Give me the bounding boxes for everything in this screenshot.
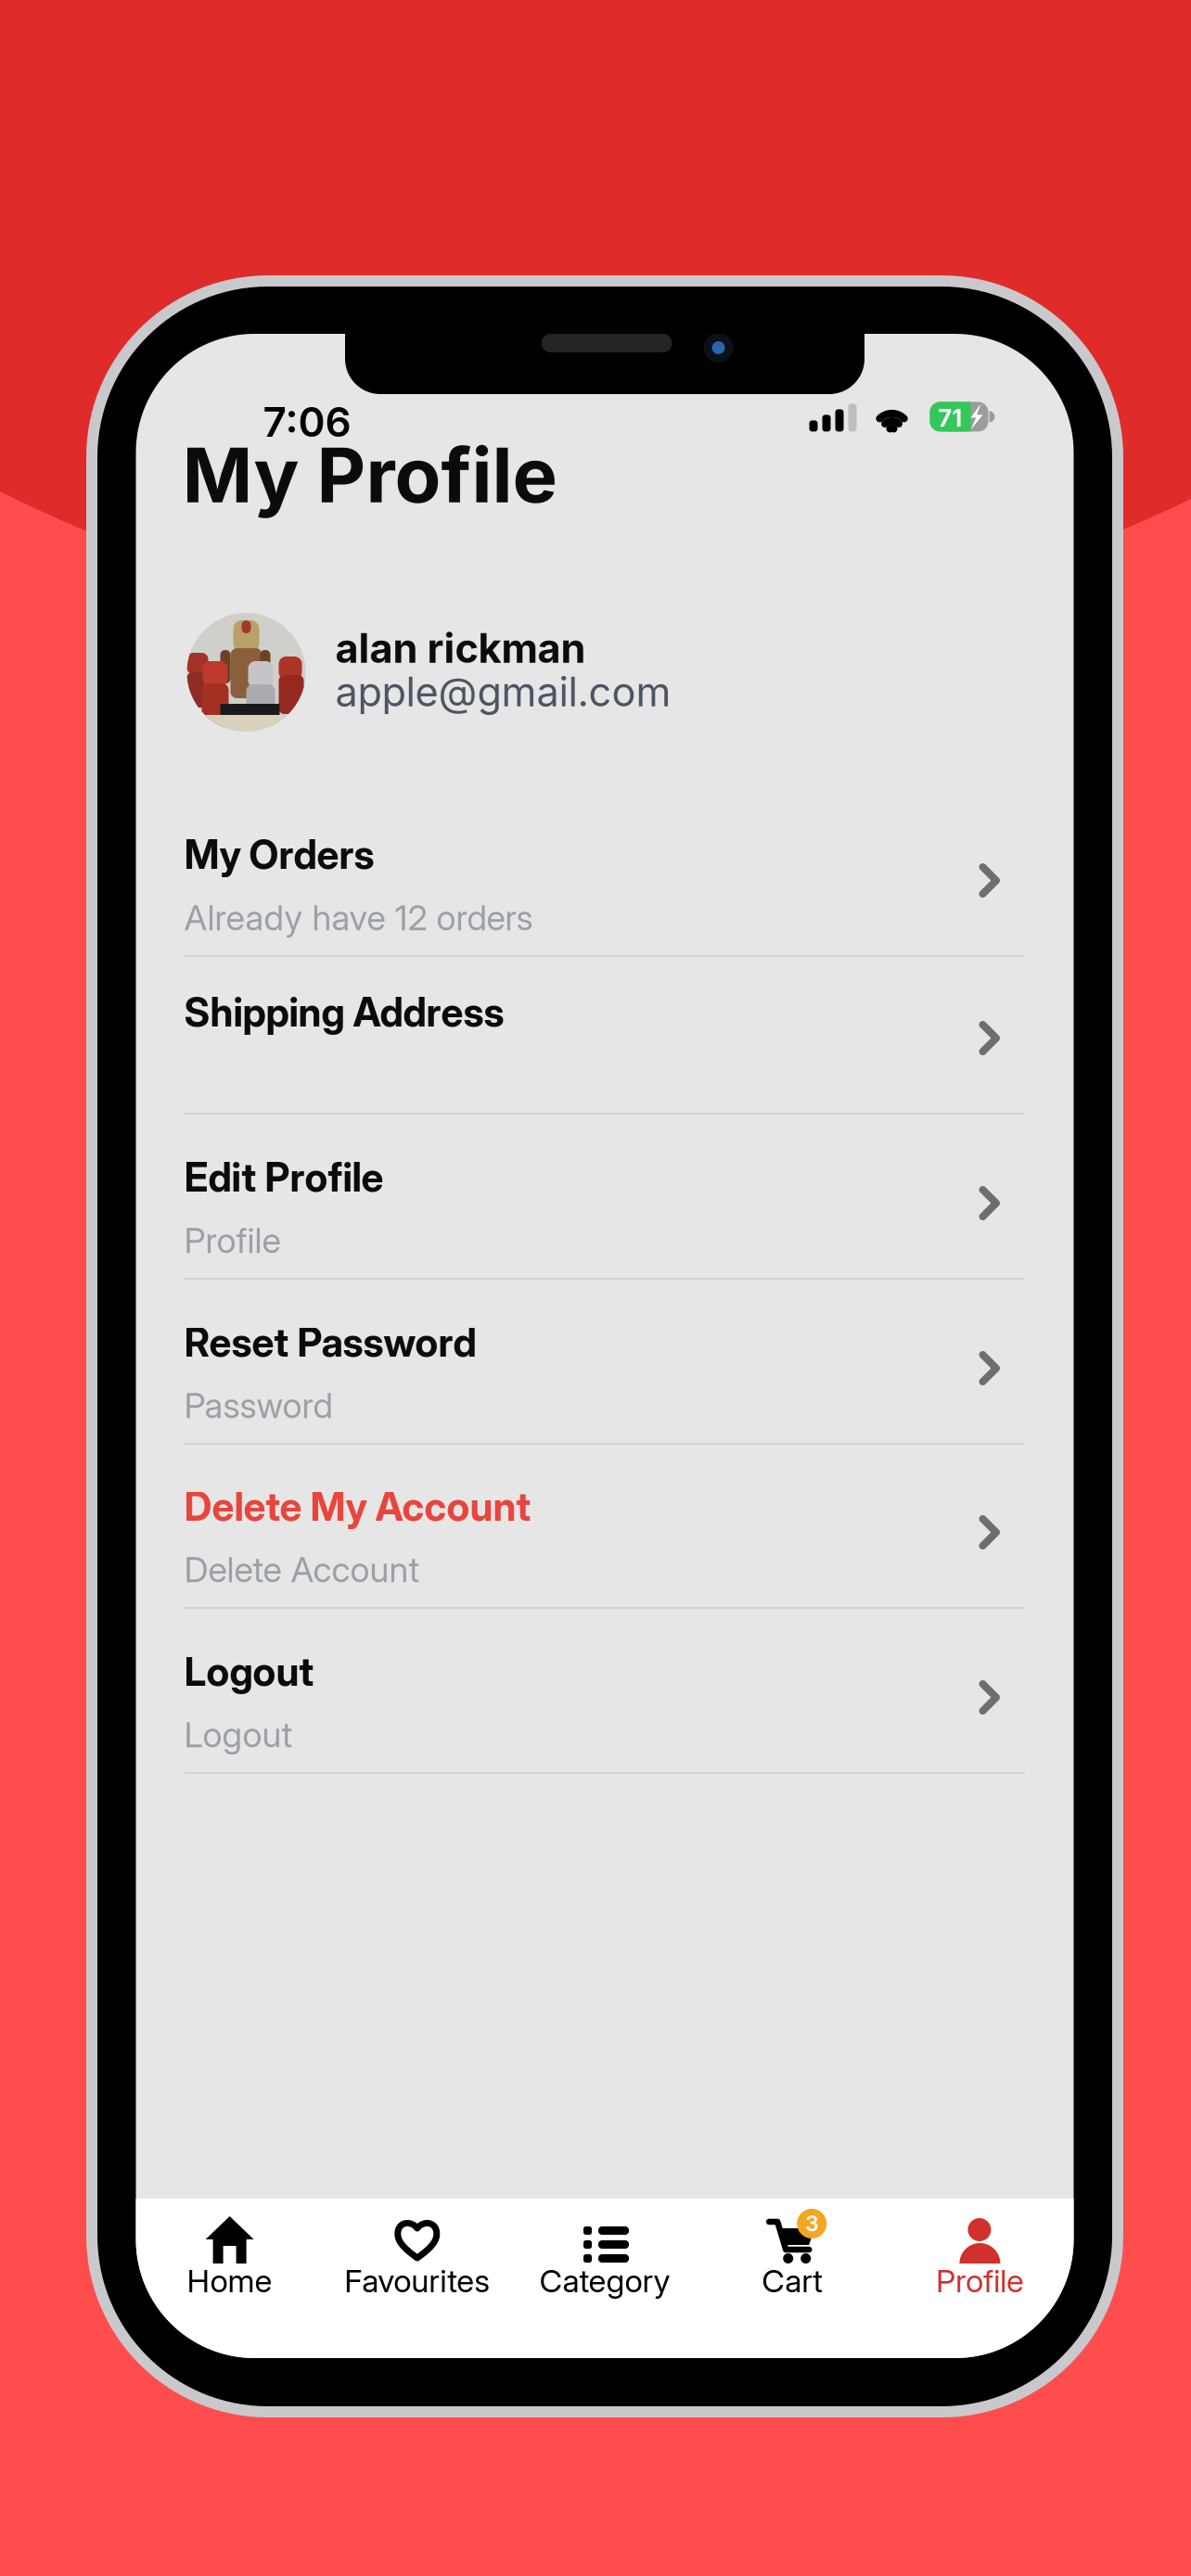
button[interactable]: Delete My Account	[136, 1445, 1074, 1609]
staticText: Edit Profile	[184, 1154, 384, 1201]
staticText: Logout	[184, 1714, 293, 1756]
button[interactable]: Edit Profile	[136, 1115, 1074, 1280]
staticText: Cart	[762, 2262, 823, 2300]
button[interactable]: Reset Password	[136, 1280, 1074, 1445]
button[interactable]: Logout	[136, 1609, 1074, 1774]
button[interactable]: Home	[136, 2199, 323, 2358]
staticText: apple@gmail.com	[335, 668, 671, 716]
staticText: Category	[539, 2262, 670, 2300]
staticText: Already have 12 orders	[184, 897, 533, 939]
staticText: My Orders	[184, 831, 374, 878]
button[interactable]: Category	[511, 2199, 699, 2358]
button[interactable]: Shipping Address	[136, 957, 1074, 1115]
staticText: 71	[938, 404, 962, 432]
staticText: Logout	[184, 1648, 314, 1695]
staticText: Password	[184, 1384, 333, 1426]
staticText: Delete My Account	[184, 1483, 531, 1530]
staticText: Shipping Address	[184, 988, 504, 1036]
staticText: Reset Password	[184, 1319, 476, 1366]
staticText: 7:06	[263, 397, 351, 447]
button[interactable]: Favourites	[323, 2199, 511, 2358]
staticText: 3	[805, 2211, 818, 2236]
staticText: My Profile	[182, 429, 557, 521]
staticText: Profile	[184, 1219, 281, 1261]
staticText: Delete Account	[184, 1549, 420, 1590]
button[interactable]: Profile	[886, 2199, 1074, 2358]
staticText: Profile	[936, 2262, 1024, 2300]
button[interactable]: 3	[699, 2199, 886, 2358]
staticText: alan rickman	[335, 624, 586, 673]
staticText: Home	[187, 2262, 272, 2300]
button[interactable]: My Orders	[136, 792, 1074, 957]
staticText: Favourites	[344, 2262, 490, 2300]
